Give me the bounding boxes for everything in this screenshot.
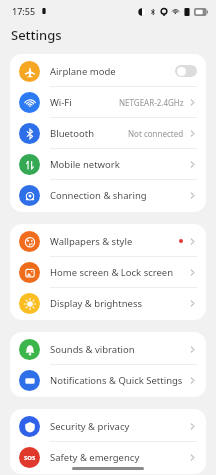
button[interactable]: Wallpapers & style (10, 226, 206, 257)
staticText: Home screen & Lock screen (50, 266, 174, 279)
staticText: NETGEAR-2.4GHz (119, 97, 184, 108)
button[interactable]: Sounds & vibration (10, 334, 206, 365)
button[interactable]: Security & privacy (10, 411, 206, 442)
staticText: SOS (24, 454, 36, 462)
staticText: Wi-Fi (50, 96, 72, 109)
staticText: Connection & sharing (50, 189, 147, 202)
button[interactable]: SOS (10, 442, 206, 472)
button[interactable]: Airplane mode toggle (175, 65, 197, 77)
button[interactable]: Notifications & Quick Settings (10, 365, 206, 395)
staticText: Mobile network (50, 158, 120, 171)
staticText: Sounds & vibration (50, 343, 135, 356)
staticText: Security & privacy (50, 420, 130, 433)
button[interactable]: Bluetooth (10, 118, 206, 149)
button[interactable]: Connection & sharing (10, 180, 206, 210)
staticText: Notifications & Quick Settings (50, 374, 183, 387)
button[interactable]: Display & brightness (10, 288, 206, 318)
staticText: Not connected (128, 128, 184, 139)
staticText: Settings (11, 26, 62, 44)
staticText: Safety & emergency (50, 451, 140, 464)
staticText: Airplane mode (50, 65, 116, 78)
button[interactable]: Airplane mode (10, 56, 206, 87)
button[interactable]: Home screen & Lock screen (10, 257, 206, 288)
button[interactable]: Mobile network (10, 149, 206, 180)
staticText: Wallpapers & style (50, 235, 133, 248)
staticText: 17:55 (12, 5, 36, 17)
staticText: Bluetooth (50, 127, 95, 140)
staticText: Display & brightness (50, 297, 142, 310)
button[interactable]: Wi-Fi (10, 87, 206, 118)
